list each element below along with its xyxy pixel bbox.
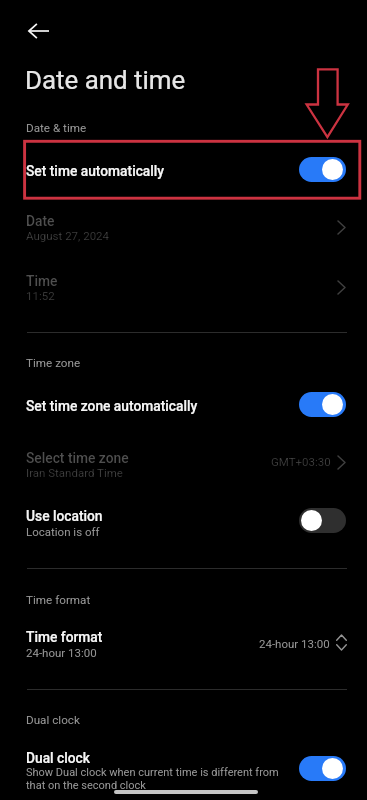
button[interactable]: Switch on: [299, 157, 346, 182]
staticText: Set time automatically: [26, 163, 165, 179]
staticText: Dual clock: [26, 713, 80, 727]
staticText: August 27, 2024: [26, 229, 110, 242]
button[interactable]: Back: [14, 7, 62, 55]
staticText: GMT+03:30: [271, 455, 331, 468]
staticText: Iran Standard Time: [26, 466, 123, 479]
button[interactable]: Switch on: [299, 756, 346, 781]
staticText: Date: [26, 213, 55, 229]
button[interactable]: Switch off: [299, 508, 346, 533]
staticText: Dual clock: [26, 750, 91, 766]
staticText: Date & time: [26, 121, 87, 135]
staticText: Show Dual clock when current time is dif…: [26, 766, 282, 792]
staticText: Location is off: [26, 525, 100, 538]
button[interactable]: Switch on: [299, 392, 346, 417]
staticText: Set time zone automatically: [26, 398, 198, 414]
staticText: 24-hour 13:00: [26, 646, 97, 659]
staticText: Time format: [26, 629, 103, 645]
staticText: Time format: [26, 593, 91, 607]
staticText: Date and time: [25, 65, 186, 95]
staticText: 11:52: [26, 289, 55, 302]
staticText: Time: [26, 273, 58, 289]
staticText: 24-hour 13:00: [259, 637, 330, 650]
staticText: Select time zone: [26, 450, 129, 466]
staticText: Time zone: [26, 356, 81, 370]
staticText: Use location: [26, 508, 103, 524]
